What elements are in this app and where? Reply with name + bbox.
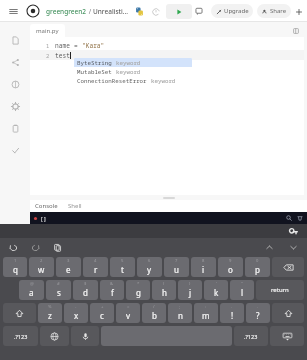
staticText: / (153, 304, 155, 310)
button[interactable]: Comments (192, 4, 206, 18)
button[interactable]: Console (30, 200, 63, 212)
button[interactable]: return (256, 280, 304, 300)
button[interactable]: Shift (272, 303, 304, 323)
button[interactable]: $ (73, 280, 98, 300)
staticText: . (231, 304, 233, 310)
staticText: ) (189, 281, 191, 287)
staticText: 6 (148, 258, 151, 264)
staticText: o (228, 264, 233, 275)
button[interactable]: # (46, 280, 71, 300)
button[interactable]: 4 (83, 257, 108, 277)
button[interactable]: * (126, 280, 150, 300)
button[interactable]: ; (168, 303, 192, 323)
staticText: - (75, 304, 77, 310)
button[interactable]: Python (133, 5, 146, 18)
staticText: = (127, 304, 130, 310)
button[interactable]: . (246, 303, 270, 323)
button[interactable]: @ (19, 280, 44, 300)
button[interactable]: Clear (296, 214, 304, 222)
button[interactable]: MutableSet (74, 67, 192, 76)
button[interactable]: . (220, 303, 244, 323)
button[interactable]: 0 (245, 257, 270, 277)
button[interactable]: Checks (4, 139, 26, 161)
staticText: ' (216, 281, 217, 287)
staticText: q (13, 264, 18, 275)
staticText: return (271, 286, 289, 294)
staticText: s (57, 287, 61, 298)
button[interactable]: 3 (56, 257, 81, 277)
button[interactable]: : (194, 303, 218, 323)
button[interactable]: % (38, 303, 62, 323)
staticText: u (174, 264, 179, 275)
button[interactable]: ByteString (74, 58, 192, 67)
button[interactable]: ConnectionResetError (74, 76, 192, 85)
button[interactable]: Change language (40, 326, 69, 346)
button[interactable]: History (149, 5, 162, 18)
button[interactable]: Undo (7, 241, 20, 254)
button[interactable]: + (90, 303, 114, 323)
button[interactable]: Shift (3, 303, 36, 323)
staticText: * (137, 281, 140, 287)
staticText: $ (84, 281, 87, 287)
staticText: t (121, 264, 124, 275)
staticText: c (100, 310, 104, 321)
button[interactable]: Menu (5, 3, 21, 19)
button[interactable]: Version control (4, 51, 26, 73)
staticText: 2 (40, 258, 43, 264)
button[interactable]: Settings (4, 95, 26, 117)
button[interactable]: 7 (164, 257, 189, 277)
button[interactable]: Packages (4, 73, 26, 95)
button[interactable]: Previous (263, 241, 276, 254)
button[interactable]: New (295, 5, 303, 18)
button[interactable]: Voice input (71, 326, 99, 346)
staticText: k (214, 287, 219, 298)
button[interactable]: ) (178, 280, 202, 300)
button[interactable]: 5 (110, 257, 135, 277)
staticText: + (101, 304, 104, 310)
button[interactable]: Search (285, 214, 293, 222)
button[interactable]: 1 (3, 257, 27, 277)
button[interactable]: Files (4, 29, 26, 51)
staticText: 3 (67, 258, 70, 264)
button[interactable]: Secrets (4, 117, 26, 139)
staticText: & (110, 281, 114, 287)
staticText: z (48, 310, 52, 321)
staticText: 0 (256, 258, 259, 264)
staticText: w (38, 264, 45, 275)
button[interactable]: main.py (30, 24, 65, 37)
button[interactable]: Layout (291, 26, 301, 36)
staticText: test (55, 51, 70, 59)
staticText: l (241, 287, 244, 298)
staticText: j (189, 287, 192, 298)
button[interactable]: = (116, 303, 140, 323)
button[interactable]: Home (25, 3, 41, 19)
staticText: main.py (36, 27, 59, 35)
button[interactable]: .?123 (234, 326, 268, 346)
button[interactable]: Hide keyboard (270, 326, 304, 346)
button[interactable]: " (230, 280, 254, 300)
button[interactable]: ( (152, 280, 176, 300)
button[interactable]: Shell (63, 200, 87, 212)
staticText: r (94, 264, 98, 275)
button[interactable]: Backspace (272, 257, 304, 277)
button[interactable]: 8 (191, 257, 216, 277)
staticText: keyword (151, 77, 176, 85)
button[interactable]: Passwords (288, 226, 299, 237)
button[interactable]: & (100, 280, 124, 300)
button[interactable]: - (64, 303, 88, 323)
button[interactable]: Next (287, 241, 300, 254)
button[interactable]: 6 (137, 257, 162, 277)
button[interactable]: Redo (29, 241, 42, 254)
button[interactable]: Run (166, 4, 192, 19)
button[interactable]: .?123 (3, 326, 38, 346)
button[interactable]: 9 (218, 257, 243, 277)
button[interactable]: 2 (29, 257, 54, 277)
button[interactable]: ' (204, 280, 228, 300)
staticText: h (162, 287, 167, 298)
staticText: = (74, 41, 82, 49)
button[interactable]: Upgrade (211, 4, 253, 18)
button[interactable]: Share (257, 4, 291, 18)
button[interactable]: Paste (51, 241, 64, 254)
button[interactable]: / (142, 303, 166, 323)
